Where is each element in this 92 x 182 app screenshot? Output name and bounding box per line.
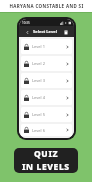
staticText: Level 2 <box>32 61 45 66</box>
button[interactable]: Level 4 <box>21 90 72 105</box>
staticText: HARYANA CONSTABLE AND SI <box>9 3 84 9</box>
button[interactable]: Level 5 <box>21 107 72 122</box>
staticText: QUIZ <box>34 148 59 160</box>
button[interactable]: Back <box>23 28 31 36</box>
button[interactable]: Level 3 <box>21 73 72 88</box>
staticText: Level 5 <box>32 112 45 117</box>
button[interactable]: Delete <box>62 28 70 36</box>
staticText: Level 6 <box>32 128 45 133</box>
button[interactable]: Level 6 <box>21 124 72 136</box>
button[interactable]: Level 2 <box>21 56 72 71</box>
button[interactable]: Level 1 <box>21 39 72 54</box>
staticText: Level 4 <box>32 95 45 100</box>
staticText: Level 3 <box>32 78 45 83</box>
staticText: 10:35 <box>22 21 30 25</box>
staticText: IN LEVELS <box>22 161 70 173</box>
staticText: Level 1 <box>32 44 45 49</box>
button[interactable]: QUIZ <box>14 148 78 173</box>
staticText: Select Level <box>33 29 57 35</box>
